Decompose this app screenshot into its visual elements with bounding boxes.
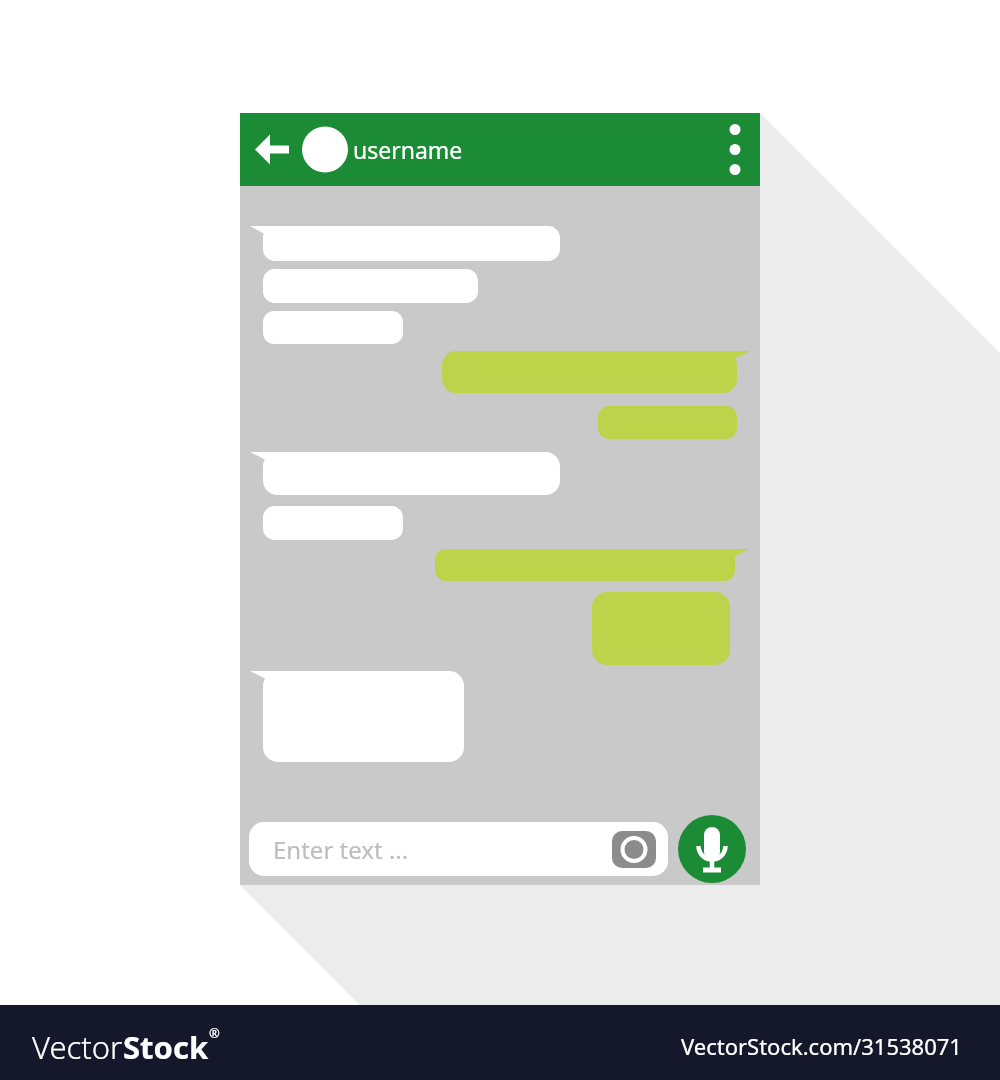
- button[interactable]: Profile photo: [302, 118, 348, 180]
- button[interactable]: Back: [244, 113, 302, 186]
- button[interactable]: More options: [714, 113, 758, 186]
- button[interactable]: Voice message: [678, 815, 746, 883]
- button[interactable]: username: [350, 120, 530, 176]
- button[interactable]: Camera: [608, 827, 660, 873]
- button[interactable]: Enter text: [249, 822, 604, 876]
